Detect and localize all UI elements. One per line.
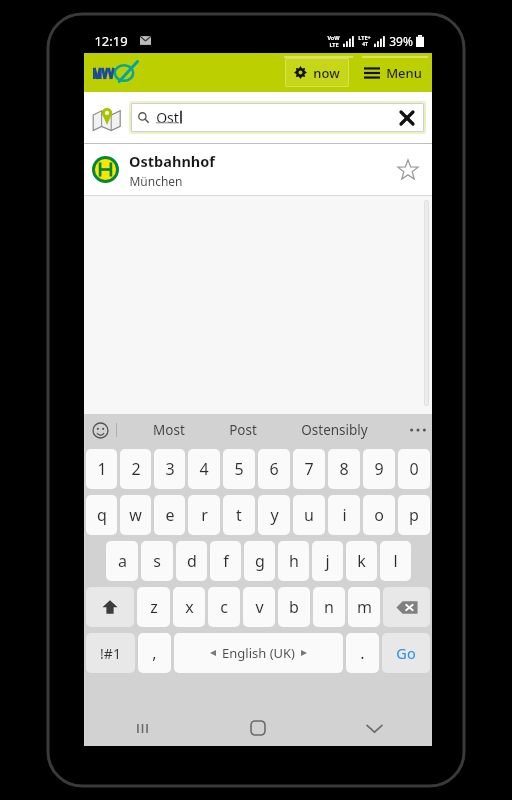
button[interactable]: j [312,541,343,581]
button[interactable]: a [106,541,138,581]
button[interactable]: 0 [398,449,430,489]
button[interactable]: English (UK) [174,633,343,673]
staticText: now [313,64,340,82]
button[interactable]: !#1 [86,633,135,673]
button[interactable]: now [285,58,349,87]
button[interactable]: Ostbahnhof [84,144,432,195]
button[interactable]: v [243,587,275,627]
button[interactable]: 2 [120,449,151,489]
staticText: l [393,550,398,572]
staticText: 4T [362,41,368,48]
button[interactable]: 5 [223,449,255,489]
button[interactable]: g [244,541,275,581]
staticText: x [185,596,194,618]
staticText: LTE [329,41,339,48]
button[interactable]: z [137,587,170,627]
staticText: 0 [409,458,419,480]
button[interactable]: 3 [154,449,185,489]
staticText: e [165,504,175,526]
button[interactable]: Most [145,417,193,443]
button[interactable]: x [173,587,205,627]
button[interactable]: 8 [328,449,360,489]
button[interactable]: Ostensibly [293,417,376,443]
staticText: i [342,504,347,526]
staticText: 6 [269,458,279,480]
staticText: Menu [386,64,422,82]
button[interactable]: Map [90,101,124,135]
button[interactable]: Recent apps [84,710,200,746]
staticText: 4 [199,458,209,480]
staticText: 12:19 [94,32,128,50]
staticText: c [220,596,228,618]
button[interactable]: Emoji [84,414,116,446]
staticText: h [289,550,299,572]
button[interactable]: h [278,541,309,581]
staticText: o [374,504,384,526]
button[interactable]: t [223,495,255,535]
button[interactable]: i [328,495,360,535]
staticText: English (UK) [222,644,295,662]
staticText: München [129,173,183,189]
staticText: 8 [339,458,349,480]
staticText: f [223,550,229,572]
staticText: !#1 [100,644,121,663]
staticText: p [409,504,419,526]
button[interactable]: Shift [86,587,134,627]
button[interactable]: Clear [397,108,417,128]
staticText: a [118,550,127,572]
staticText: t [236,504,242,526]
button[interactable]: k [346,541,377,581]
button[interactable]: q [86,495,117,535]
button[interactable]: Go [382,633,430,673]
button[interactable]: p [398,495,430,535]
staticText: j [325,550,330,572]
button[interactable]: l [380,541,411,581]
button[interactable]: Hide keyboard [316,710,432,746]
button[interactable]: Add to favourites [392,154,424,186]
button[interactable]: More suggestions [404,414,432,446]
button[interactable]: Post [221,417,265,443]
button[interactable]: 1 [86,449,117,489]
button[interactable]: Home [200,710,316,746]
staticText: 3 [165,458,175,480]
staticText: 39% [389,33,413,49]
staticText: w [129,504,142,526]
button[interactable]: n [313,587,345,627]
button[interactable]: o [363,495,395,535]
staticText: y [270,504,279,526]
button[interactable]: , [138,633,171,673]
staticText: v [255,596,264,618]
staticText: b [289,596,299,618]
staticText: VoW [327,34,340,41]
button[interactable]: d [176,541,207,581]
button[interactable]: . [346,633,379,673]
button[interactable]: r [188,495,220,535]
button[interactable]: b [278,587,310,627]
staticText: 2 [131,458,141,480]
button[interactable]: y [258,495,290,535]
staticText: Ostbahnhof [129,151,215,171]
staticText: k [357,550,366,572]
button[interactable]: 9 [363,449,395,489]
button[interactable]: 4 [188,449,220,489]
staticText: . [360,642,365,664]
button[interactable]: f [210,541,241,581]
button[interactable]: 6 [258,449,290,489]
button[interactable]: Ost [131,103,424,132]
staticText: Post [229,421,257,439]
button[interactable]: s [141,541,173,581]
staticText: , [152,642,157,664]
staticText: u [304,504,314,526]
button[interactable]: 7 [293,449,325,489]
button[interactable]: u [293,495,325,535]
staticText: LTE+ [358,34,371,41]
button[interactable]: w [120,495,151,535]
button[interactable]: Menu [358,58,428,87]
staticText: r [201,504,208,526]
button[interactable]: e [154,495,185,535]
staticText: 9 [374,458,384,480]
button[interactable]: m [348,587,380,627]
button[interactable]: Backspace [383,587,430,627]
button[interactable]: MVV Home [90,58,144,88]
button[interactable]: c [208,587,240,627]
